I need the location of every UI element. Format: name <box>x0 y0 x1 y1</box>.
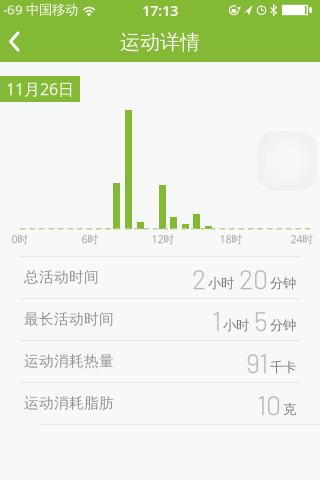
staticText: 17:13 <box>142 0 178 20</box>
staticText: 0时 <box>11 232 28 246</box>
staticText: 12时 <box>151 232 174 246</box>
staticText: 2 <box>192 262 206 294</box>
staticText: 24时 <box>290 232 313 246</box>
staticText: 总活动时间 <box>24 268 99 286</box>
staticText: 运动消耗热量 <box>24 352 114 370</box>
staticText: 6时 <box>81 232 98 246</box>
staticText: 克 <box>283 401 296 417</box>
staticText: 运动详情 <box>120 30 200 55</box>
staticText: 分钟 <box>270 275 296 291</box>
button[interactable]: Back <box>0 20 34 62</box>
staticText: 20 <box>239 262 268 294</box>
staticText: 千卡 <box>270 359 296 375</box>
staticText: 1 <box>212 304 221 336</box>
staticText: 5 <box>254 304 268 336</box>
staticText: 运动消耗脂肪 <box>24 394 114 412</box>
staticText: -69 中国移动 <box>3 0 78 18</box>
staticText: 11月26日 <box>6 78 74 100</box>
staticText: 分钟 <box>270 317 296 333</box>
staticText: 小时 <box>208 275 234 291</box>
staticText: 最长活动时间 <box>24 310 114 328</box>
staticText: 18时 <box>219 232 242 246</box>
staticText: 小时 <box>223 317 249 333</box>
staticText: 10 <box>257 388 281 420</box>
staticText: 91 <box>246 346 268 378</box>
